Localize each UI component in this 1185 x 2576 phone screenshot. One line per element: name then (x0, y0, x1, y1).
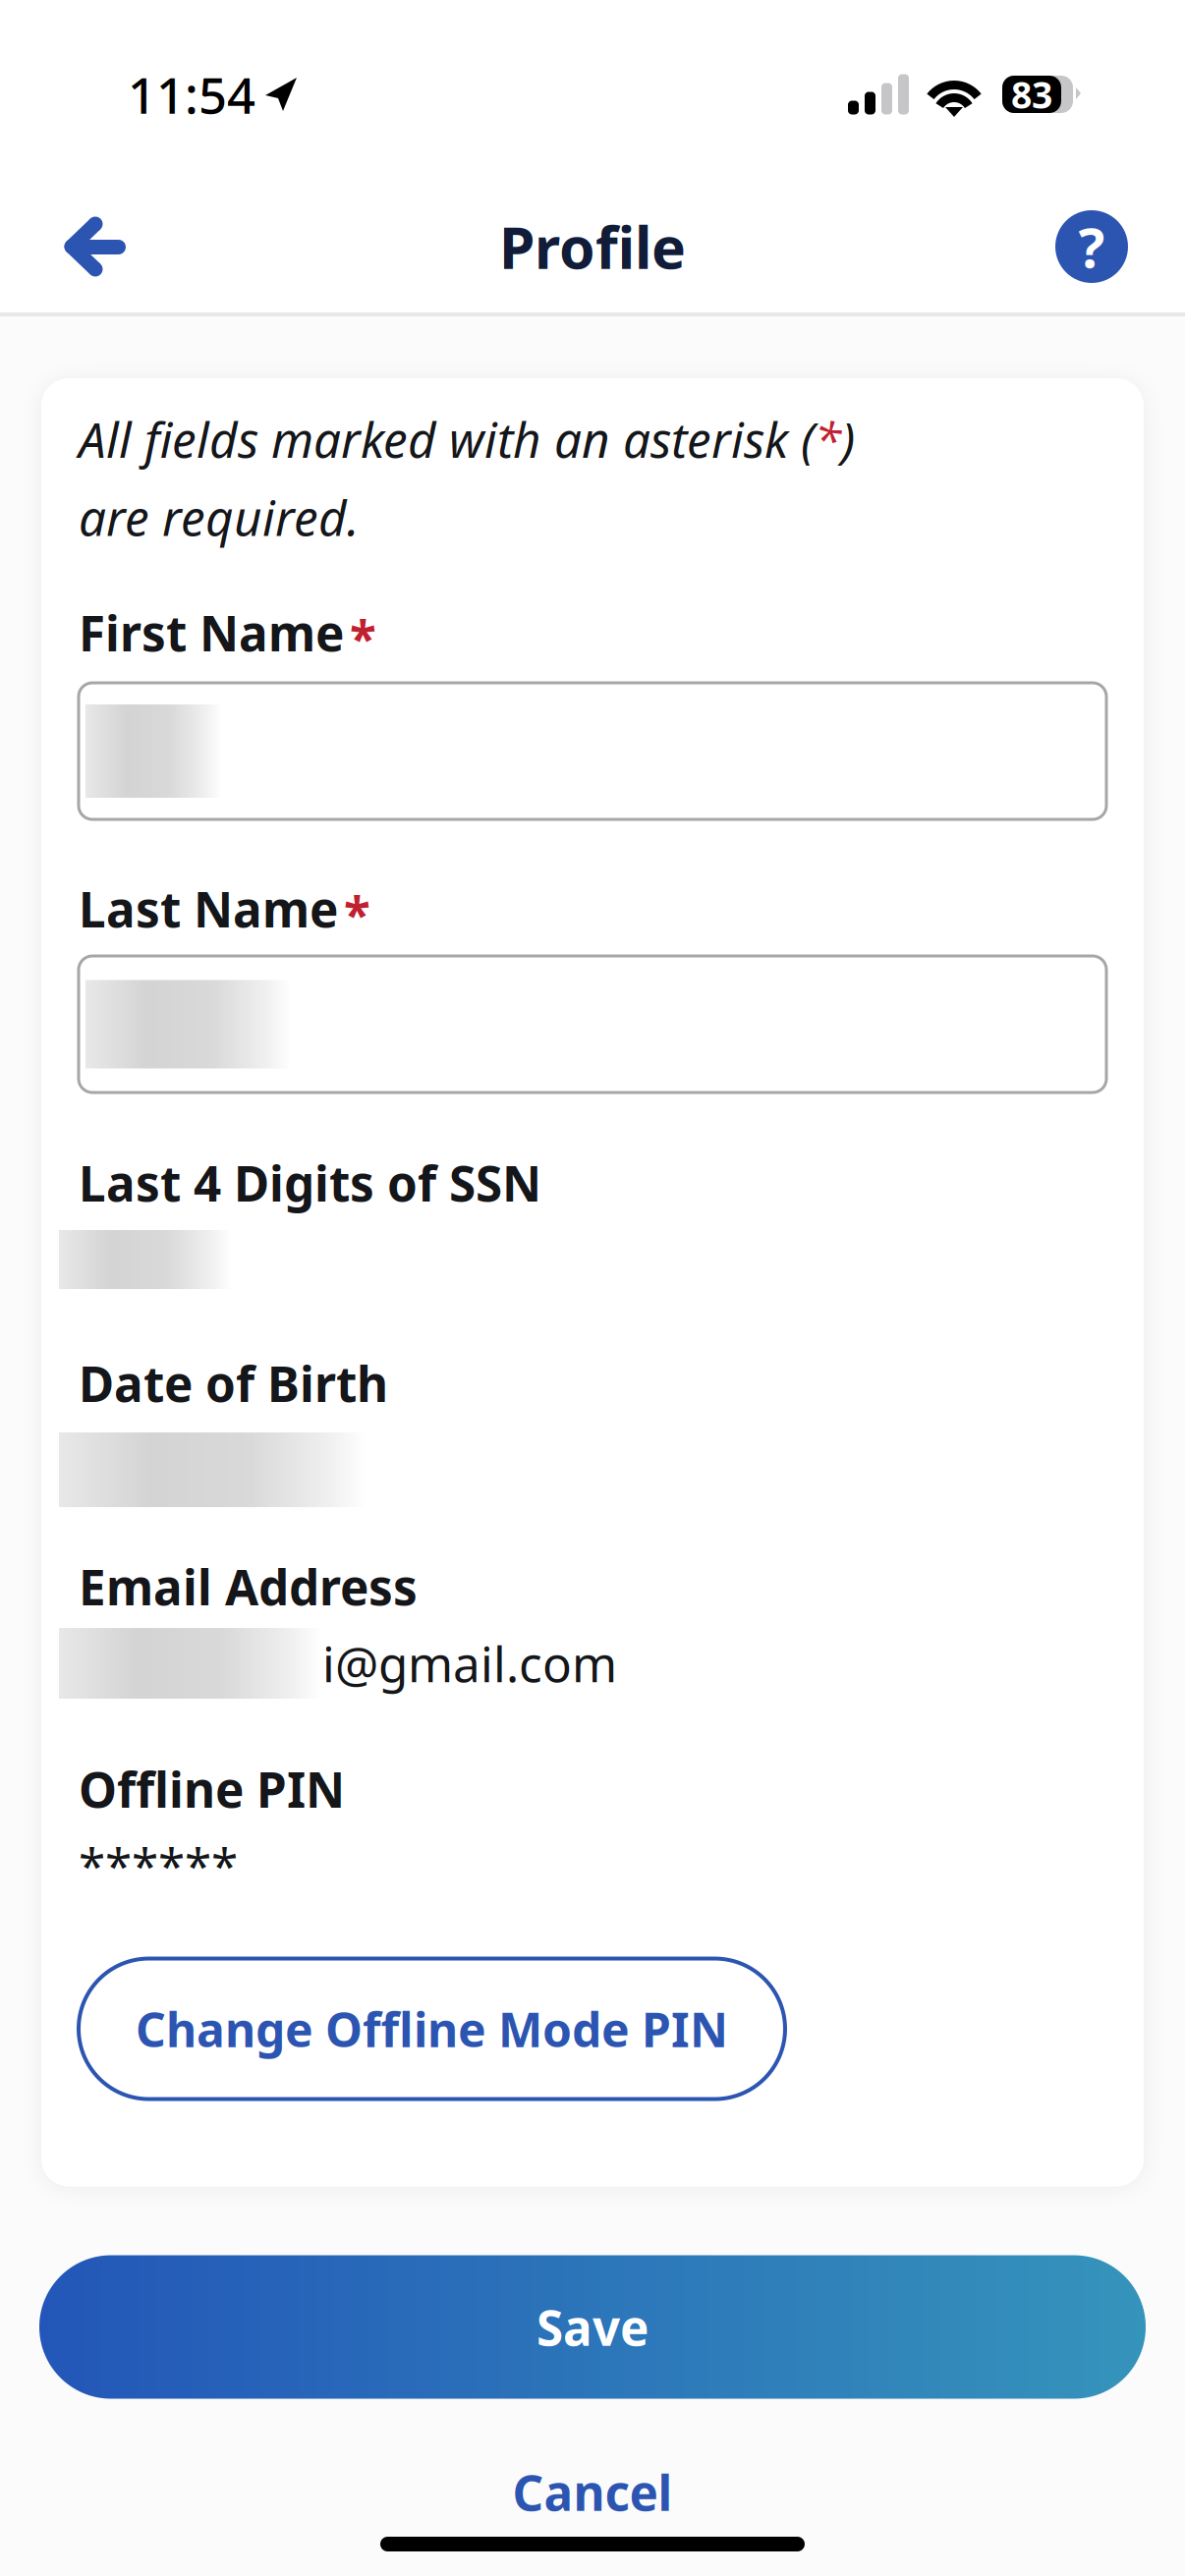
staticText: 11:54 (128, 61, 255, 127)
staticText: * (815, 407, 841, 471)
staticText: * (350, 605, 376, 670)
staticText: Date of Birth (79, 1351, 388, 1415)
staticText: Offline PIN (79, 1757, 345, 1821)
button[interactable]: Change Offline Mode PIN (79, 1959, 785, 2099)
staticText: * (344, 881, 370, 946)
button[interactable]: Help (1055, 210, 1128, 283)
staticText: All fields marked with an asterisk ( (79, 407, 815, 471)
staticText: Last 4 Digits of SSN (79, 1150, 541, 1215)
button[interactable]: Save (39, 2255, 1146, 2399)
button[interactable]: Back (43, 196, 147, 298)
staticText: Change Offline Mode PIN (136, 1998, 728, 2060)
button[interactable]: Cancel (0, 2449, 1185, 2535)
staticText: are required. (79, 485, 360, 549)
staticText: Email Address (79, 1554, 418, 1619)
staticText: i@gmail.com (322, 1631, 617, 1696)
staticText: 83 (1011, 70, 1052, 119)
staticText: Last Name (79, 876, 338, 941)
staticText: Cancel (512, 2460, 673, 2524)
staticText: ) (841, 407, 855, 471)
staticText: Save (536, 2295, 649, 2359)
staticText: Profile (499, 208, 686, 285)
staticText: ****** (79, 1833, 238, 1898)
staticText: ? (1078, 210, 1105, 283)
staticText: First Name (79, 600, 344, 665)
